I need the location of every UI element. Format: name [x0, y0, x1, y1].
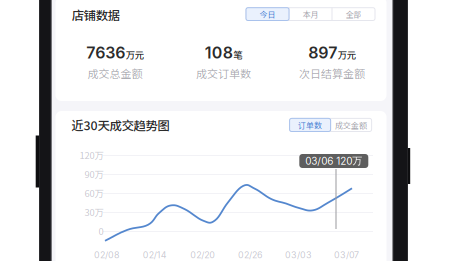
staticText: 次日结算金额 [299, 65, 365, 81]
staticText: 120万 [79, 148, 103, 162]
staticText: 成交订单数 [196, 65, 251, 81]
staticText: 订单数 [298, 119, 322, 131]
staticText: 60万 [84, 186, 103, 200]
staticText: 近30天成交趋势图 [71, 116, 169, 134]
staticText: 02/08 [94, 250, 120, 260]
button[interactable]: 订单数 [290, 118, 331, 131]
staticText: 7636 [86, 43, 125, 62]
staticText: 全部 [345, 8, 361, 20]
staticText: 90万 [84, 167, 103, 181]
button[interactable]: 今日 [246, 8, 289, 20]
button[interactable]: 成交金额 [331, 118, 372, 131]
staticText: 万元 [126, 48, 144, 61]
staticText: 成交总金额 [87, 65, 142, 81]
staticText: 万元 [338, 48, 356, 61]
staticText: 店铺数据 [72, 6, 120, 24]
staticText: 897 [308, 43, 337, 62]
staticText: 成交金额 [335, 119, 367, 131]
staticText: 0 [98, 224, 103, 238]
staticText: 02/20 [190, 250, 215, 260]
staticText: 03/03 [285, 250, 312, 260]
button[interactable]: 本月 [289, 8, 332, 20]
staticText: 本月 [302, 8, 318, 20]
staticText: 03/06 120万 [305, 155, 362, 167]
staticText: 笔 [233, 48, 242, 61]
staticText: 02/14 [143, 250, 167, 260]
button[interactable]: 全部 [332, 8, 375, 20]
staticText: 02/26 [238, 250, 263, 260]
staticText: 今日 [259, 8, 275, 20]
staticText: 108 [205, 43, 233, 62]
staticText: 03/07 [334, 250, 359, 260]
staticText: 30万 [84, 205, 103, 219]
